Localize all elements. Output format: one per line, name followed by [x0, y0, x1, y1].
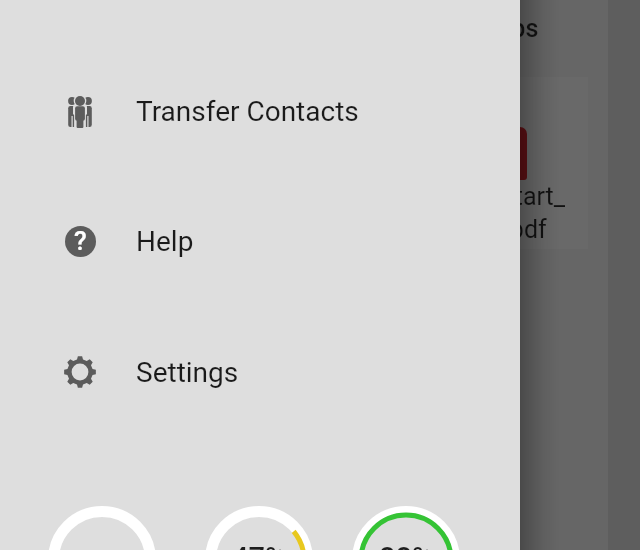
staticText: Transfer Contacts — [136, 95, 359, 128]
button[interactable]: Settings — [0, 332, 520, 412]
other: Transfer Contacts — [68, 95, 92, 128]
button[interactable]: Transfer Contacts — [0, 71, 520, 151]
staticText: ? — [74, 226, 87, 256]
other: Settings — [64, 356, 96, 388]
staticText: quickstart_ guide.pdf — [442, 182, 566, 244]
staticText: 88% — [379, 541, 434, 550]
staticText: Backups — [442, 14, 539, 43]
staticText: Help — [136, 225, 194, 258]
staticText: Settings — [136, 356, 239, 389]
other: Help — [65, 226, 96, 257]
staticText: 47% — [232, 541, 287, 550]
button[interactable]: Help — [0, 201, 520, 281]
